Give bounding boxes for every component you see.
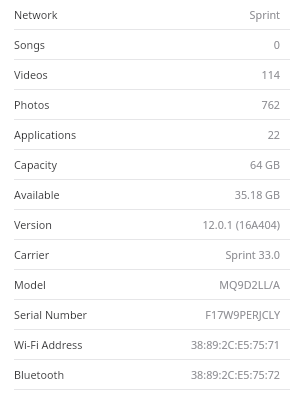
staticText: 12.0.1 (16A404) (202, 217, 280, 232)
staticText: Songs (14, 37, 45, 52)
staticText: Videos (14, 67, 48, 82)
staticText: Carrier (14, 247, 50, 262)
staticText: 38:89:2C:E5:75:72 (190, 367, 280, 382)
staticText: Network (14, 7, 58, 22)
staticText: Available (14, 187, 60, 202)
button[interactable]: Wi-Fi Address (0, 330, 290, 359)
button[interactable]: Songs (0, 30, 290, 59)
staticText: MQ9D2LL/A (219, 277, 280, 292)
button[interactable]: Available (0, 180, 290, 209)
button[interactable]: Capacity (0, 150, 290, 179)
button[interactable]: Bluetooth (0, 360, 290, 389)
staticText: Model (14, 277, 46, 292)
staticText: Version (14, 217, 52, 232)
staticText: 22 (267, 127, 280, 142)
button[interactable]: Network (0, 0, 290, 29)
staticText: Serial Number (14, 307, 88, 322)
staticText: Wi-Fi Address (14, 337, 83, 352)
button[interactable]: Serial Number (0, 300, 290, 329)
staticText: Photos (14, 97, 50, 112)
button[interactable]: Version (0, 210, 290, 239)
staticText: Applications (14, 127, 77, 142)
staticText: F17W9PERJCLY (205, 307, 280, 322)
button[interactable]: Applications (0, 120, 290, 149)
staticText: 114 (261, 67, 280, 82)
staticText: 38:89:2C:E5:75:71 (190, 337, 280, 352)
staticText: Bluetooth (14, 367, 65, 382)
staticText: 0 (273, 37, 280, 52)
staticText: Capacity (14, 157, 57, 172)
staticText: 64 GB (249, 157, 280, 172)
staticText: Sprint (249, 7, 280, 22)
staticText: 35.18 GB (234, 187, 280, 202)
staticText: 762 (261, 97, 280, 112)
button[interactable]: Model (0, 270, 290, 299)
button[interactable]: Photos (0, 90, 290, 119)
button[interactable]: Carrier (0, 240, 290, 269)
button[interactable]: Videos (0, 60, 290, 89)
staticText: Sprint 33.0 (225, 247, 280, 262)
